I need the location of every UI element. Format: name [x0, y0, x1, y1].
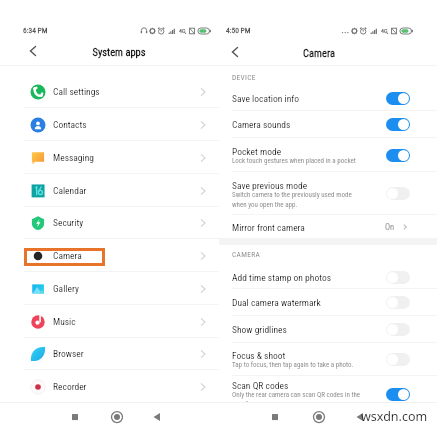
button[interactable]: Focus & shoot [219, 342, 437, 376]
staticText: Save location info [232, 93, 300, 104]
staticText: CAMERA [232, 250, 261, 259]
staticText: Mirror front camera [232, 222, 305, 233]
staticText: Calendar [53, 185, 87, 196]
staticText: Switch camera to the previously used mod… [232, 191, 352, 208]
staticText: 4G [381, 27, 388, 34]
staticText: Tap to focus, then tap again to take a p… [232, 361, 354, 369]
button[interactable]: Switch off [386, 296, 410, 309]
staticText: Contacts [53, 119, 87, 130]
button[interactable]: Camera [0, 239, 219, 272]
staticText: 4G [179, 27, 186, 34]
button[interactable]: Show gridlines [219, 316, 437, 343]
button[interactable]: Back [226, 43, 244, 61]
button[interactable]: Music [0, 305, 219, 338]
staticText: 4:50 PM [226, 26, 251, 35]
button[interactable]: Switch on [386, 149, 410, 162]
button[interactable]: Call settings [0, 75, 219, 108]
staticText: Camera [303, 47, 335, 59]
button[interactable]: Switch off [386, 323, 410, 336]
button[interactable]: Gallery [0, 272, 219, 305]
staticText: Browser [53, 348, 84, 359]
button[interactable]: Pocket mode [219, 138, 437, 172]
staticText: DEVICE [232, 73, 256, 82]
staticText: Add time stamp on photos [232, 272, 331, 283]
staticText: Messaging [53, 152, 94, 163]
staticText: Lock touch gestures when placed in a poc… [232, 157, 356, 165]
staticText: Gallery [53, 283, 79, 294]
button[interactable]: Browser [0, 337, 219, 370]
staticText: Only the rear camera can scan QR codes i… [232, 391, 361, 408]
staticText: Camera sounds [232, 119, 291, 130]
staticText: Security [53, 217, 84, 228]
staticText: Pocket mode [232, 146, 282, 157]
button[interactable]: Messaging [0, 141, 219, 174]
button[interactable]: Mirror front camera [219, 215, 437, 239]
button[interactable]: Camera sounds [219, 111, 437, 138]
staticText: Camera [53, 250, 82, 261]
staticText: Recorder [53, 381, 87, 392]
staticText: Dual camera watermark [232, 297, 321, 308]
button[interactable]: Switch off [386, 271, 410, 284]
button[interactable]: Dual camera watermark [219, 289, 437, 316]
staticText: 6:34 PM [23, 26, 48, 35]
staticText: Save previous mode [232, 180, 308, 191]
staticText: Call settings [53, 86, 100, 97]
button[interactable]: Contacts [0, 108, 219, 141]
button[interactable]: Scan QR codes [219, 377, 437, 411]
button[interactable]: Save previous mode [219, 172, 437, 215]
staticText: Music [53, 316, 76, 327]
button[interactable]: Switch on [386, 92, 410, 105]
button[interactable]: Save location info [219, 86, 437, 111]
button[interactable]: Recorder [0, 370, 219, 403]
button[interactable]: Calendar [0, 174, 219, 207]
button[interactable]: Switch off [386, 353, 410, 366]
button[interactable]: Switch on [386, 388, 410, 401]
staticText: Scan QR codes [232, 380, 289, 391]
staticText: Focus & shoot [232, 350, 286, 361]
button[interactable]: Back [24, 42, 42, 60]
staticText: Show gridlines [232, 324, 287, 335]
button[interactable]: Switch on [386, 118, 410, 131]
button[interactable]: Add time stamp on photos [219, 266, 437, 289]
staticText: System apps [92, 46, 146, 58]
button[interactable]: Switch off [386, 187, 410, 200]
staticText: On [385, 222, 395, 232]
button[interactable]: Security [0, 206, 219, 239]
staticText: wsxdn.com [361, 408, 428, 425]
